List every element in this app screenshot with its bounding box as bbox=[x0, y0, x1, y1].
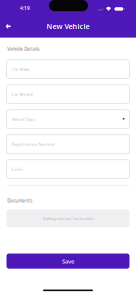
button[interactable]: Vehicle Type bbox=[6, 110, 129, 128]
staticText: Car Model bbox=[11, 91, 32, 97]
staticText: Vehicle Details bbox=[7, 46, 39, 52]
button[interactable]: Car Make bbox=[6, 60, 129, 78]
staticText: 4:19 bbox=[20, 5, 30, 11]
staticText: Save bbox=[62, 257, 74, 265]
button[interactable]: Back bbox=[2, 20, 15, 33]
staticText: Color bbox=[11, 166, 23, 172]
button[interactable]: Save bbox=[6, 253, 129, 269]
staticText: New Vehicle bbox=[46, 21, 89, 31]
button[interactable]: Color bbox=[6, 160, 129, 178]
staticText: Documents bbox=[7, 198, 32, 204]
staticText: Registration Number bbox=[11, 141, 55, 147]
staticText: Vehicle Type bbox=[11, 116, 34, 122]
staticText: Car Make bbox=[11, 66, 29, 72]
button[interactable]: Car Model bbox=[6, 85, 129, 103]
staticText: Nothing selected. Tap to select bbox=[42, 216, 93, 221]
button[interactable]: Nothing selected. Tap to select bbox=[6, 209, 129, 227]
button[interactable]: Registration Number bbox=[6, 135, 129, 153]
